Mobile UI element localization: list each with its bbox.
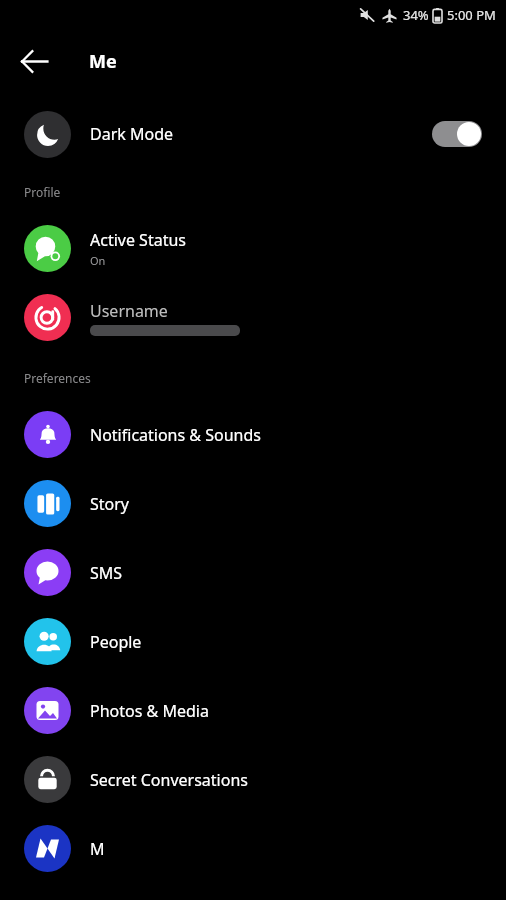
button[interactable]: SMS: [0, 538, 506, 607]
button[interactable]: Story: [0, 469, 506, 538]
button[interactable]: Notifications & Sounds: [0, 400, 506, 469]
button[interactable]: Secret Conversations: [0, 745, 506, 814]
staticText: Photos & Media: [90, 700, 209, 722]
staticText: Me: [89, 49, 117, 74]
button[interactable]: Dark Mode toggle: [432, 121, 482, 147]
staticText: Notifications & Sounds: [90, 424, 261, 446]
button[interactable]: Active Status: [0, 214, 506, 283]
button[interactable]: Back: [8, 35, 60, 87]
staticText: Preferences: [24, 370, 91, 386]
button[interactable]: People: [0, 607, 506, 676]
button[interactable]: Photos & Media: [0, 676, 506, 745]
staticText: SMS: [90, 562, 123, 584]
staticText: Profile: [24, 184, 61, 200]
staticText: Story: [90, 493, 130, 515]
staticText: M: [90, 838, 105, 860]
button[interactable]: M: [0, 814, 506, 883]
staticText: On: [90, 253, 106, 268]
staticText: Active Status: [90, 229, 186, 251]
button[interactable]: Username: [0, 283, 506, 352]
staticText: 5:00 PM: [447, 6, 496, 24]
staticText: 34%: [403, 6, 429, 24]
staticText: People: [90, 631, 142, 653]
staticText: Dark Mode: [90, 123, 174, 145]
staticText: Secret Conversations: [90, 769, 248, 791]
button[interactable]: Dark Mode: [0, 106, 506, 162]
staticText: Username: [90, 300, 168, 322]
